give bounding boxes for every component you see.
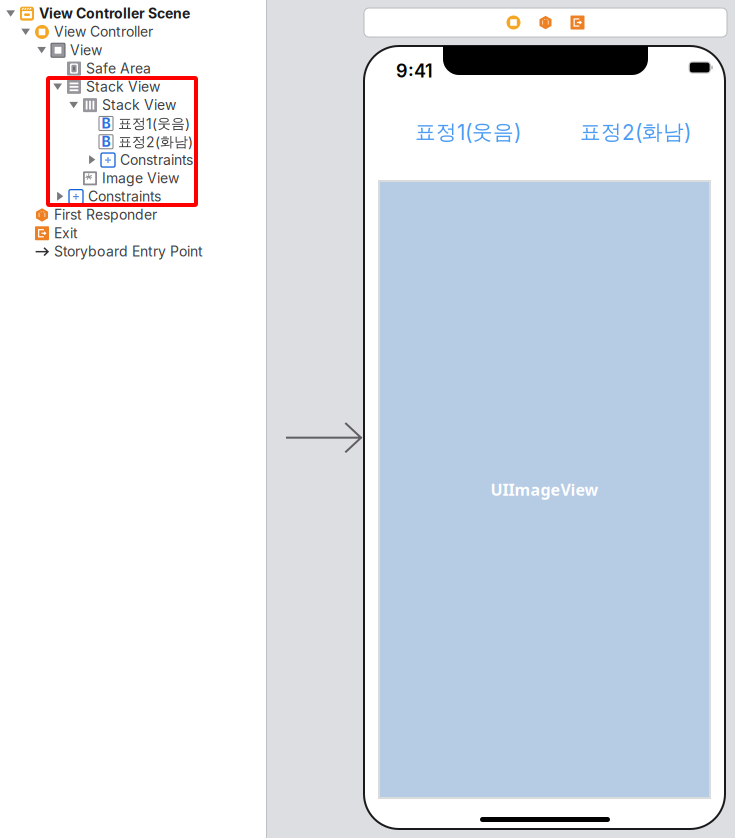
button[interactable]: Constraints xyxy=(0,150,266,169)
button[interactable]: Constraints xyxy=(0,187,266,205)
staticText: Stack View xyxy=(102,96,176,113)
staticText: 9:41 xyxy=(396,60,433,82)
button[interactable]: View Controller Scene xyxy=(0,4,266,22)
staticText: 표정1(웃음) xyxy=(118,115,190,132)
staticText: Storyboard Entry Point xyxy=(54,243,203,260)
button[interactable]: Exit xyxy=(0,224,266,242)
button[interactable]: First Responder xyxy=(0,205,266,224)
button[interactable]: View Controller xyxy=(0,22,266,41)
staticText: Safe Area xyxy=(86,60,151,77)
staticText: 표정2(화남) xyxy=(580,119,691,145)
button[interactable]: Stack View xyxy=(0,95,266,114)
staticText: Stack View xyxy=(86,78,160,95)
staticText: Image View xyxy=(102,170,179,187)
staticText: 표정2(화남) xyxy=(118,133,193,151)
staticText: Constraints xyxy=(120,151,193,168)
staticText: B xyxy=(101,115,110,132)
button[interactable]: 표정1(웃음) xyxy=(415,119,521,145)
button[interactable]: Image View xyxy=(0,169,266,187)
button[interactable]: B xyxy=(0,132,266,150)
staticText: View xyxy=(70,42,102,58)
staticText: View Controller xyxy=(54,23,153,40)
staticText: 표정1(웃음) xyxy=(415,119,521,145)
button[interactable]: View xyxy=(0,41,266,59)
button[interactable]: View Controller xyxy=(505,14,521,30)
button[interactable]: B xyxy=(0,114,266,132)
staticText: Constraints xyxy=(88,188,161,205)
button[interactable]: First Responder xyxy=(537,14,553,30)
staticText: First Responder xyxy=(54,206,157,223)
staticText: B xyxy=(101,133,110,150)
button[interactable]: 표정2(화남) xyxy=(580,119,691,145)
button[interactable]: Exit xyxy=(569,14,585,30)
staticText: UIImageView xyxy=(490,479,598,500)
button[interactable]: Safe Area xyxy=(0,59,266,77)
button[interactable]: Storyboard Entry Point xyxy=(0,242,266,260)
staticText: View Controller Scene xyxy=(39,5,190,22)
staticText: Exit xyxy=(54,225,78,241)
button[interactable]: Stack View xyxy=(0,77,266,95)
